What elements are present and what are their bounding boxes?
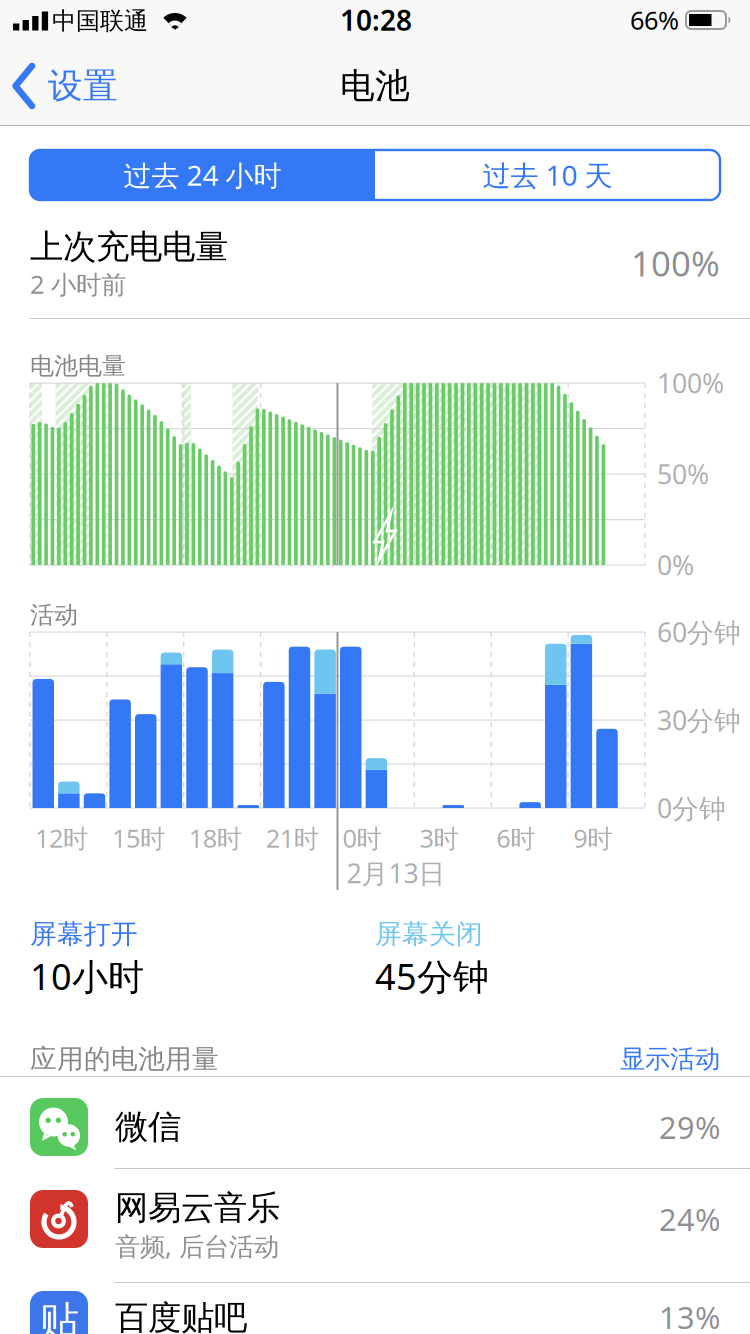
button[interactable]: 微信: [0, 1076, 750, 1168]
staticText: 上次充电电量: [30, 226, 228, 267]
staticText: 显示活动: [620, 1043, 720, 1074]
button[interactable]: 显示活动: [540, 1037, 720, 1081]
staticText: 0分钟: [657, 790, 726, 826]
staticText: 66%: [630, 3, 679, 37]
staticText: 18时: [189, 821, 242, 855]
staticText: 屏幕打开: [30, 918, 138, 950]
staticText: 中国联通: [52, 6, 148, 36]
staticText: 电池电量: [30, 351, 126, 381]
staticText: 6时: [496, 821, 535, 855]
staticText: 过去 10 天: [482, 156, 612, 194]
staticText: 活动: [30, 600, 78, 630]
staticText: 15时: [112, 821, 165, 855]
button[interactable]: 返回设置: [12, 51, 162, 121]
staticText: 30分钟: [657, 702, 741, 738]
staticText: 50%: [657, 456, 709, 492]
button[interactable]: 网易云音乐: [0, 1162, 750, 1276]
staticText: 音频, 后台活动: [115, 1229, 279, 1263]
staticText: 百度贴吧: [115, 1297, 247, 1334]
staticText: 21时: [266, 821, 319, 855]
staticText: 网易云音乐: [115, 1187, 280, 1228]
staticText: 屏幕关闭: [375, 918, 483, 950]
staticText: 29%: [659, 1107, 720, 1147]
staticText: 微信: [115, 1106, 181, 1147]
button[interactable]: 过去 24 小时: [30, 150, 375, 200]
staticText: 100%: [657, 365, 724, 401]
staticText: 2月13日: [346, 855, 445, 891]
staticText: 2 小时前: [30, 267, 126, 301]
staticText: 10小时: [30, 952, 144, 1000]
staticText: 贴: [39, 1296, 79, 1334]
staticText: 0%: [657, 547, 694, 583]
staticText: 13%: [659, 1297, 720, 1334]
staticText: 60分钟: [657, 614, 741, 650]
staticText: 9时: [573, 821, 612, 855]
staticText: 45分钟: [375, 952, 489, 1000]
staticText: 应用的电池用量: [30, 1043, 219, 1075]
staticText: 10:28: [340, 1, 412, 39]
staticText: 过去 24 小时: [123, 156, 281, 194]
staticText: 0时: [342, 821, 381, 855]
staticText: 3时: [419, 821, 458, 855]
staticText: 24%: [659, 1199, 720, 1239]
staticText: 100%: [631, 240, 720, 286]
button[interactable]: 贴: [0, 1284, 750, 1334]
staticText: 12时: [35, 821, 88, 855]
staticText: 电池: [340, 65, 410, 107]
staticText: 设置: [48, 65, 118, 107]
button[interactable]: 过去 10 天: [375, 150, 720, 200]
